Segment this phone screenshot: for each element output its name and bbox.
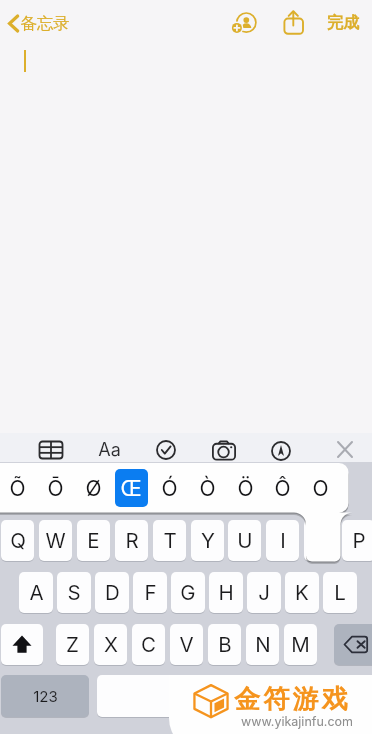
button[interactable]: Y	[191, 520, 224, 561]
staticText: J	[258, 580, 270, 605]
button[interactable]: D	[95, 572, 129, 613]
button[interactable]: Add people	[230, 9, 258, 35]
staticText: Aa	[98, 439, 121, 461]
button[interactable]: M	[284, 624, 317, 665]
staticText: A	[29, 580, 44, 605]
button[interactable]: I	[266, 520, 299, 561]
staticText: B	[218, 632, 232, 657]
staticText: W	[45, 528, 66, 553]
staticText: I	[280, 528, 286, 553]
staticText: P	[352, 528, 366, 553]
staticText: Ø	[85, 476, 102, 501]
staticText: H	[218, 580, 234, 605]
staticText: O	[312, 476, 329, 501]
staticText: N	[255, 632, 271, 657]
button[interactable]: O	[304, 520, 337, 561]
button[interactable]: F	[133, 572, 167, 613]
button[interactable]: J	[247, 572, 281, 613]
button[interactable]: X	[94, 624, 127, 665]
staticText: S	[67, 580, 81, 605]
button[interactable]: Ö	[226, 469, 264, 507]
button[interactable]: G	[171, 572, 205, 613]
staticText: Ö	[237, 476, 254, 501]
button[interactable]: Hide keyboard	[337, 441, 353, 458]
button[interactable]: Ō	[36, 469, 74, 507]
button[interactable]: 完成	[321, 10, 365, 36]
staticText: M	[291, 632, 310, 657]
button[interactable]: Markup	[271, 440, 291, 462]
button[interactable]: Shift	[1, 624, 43, 665]
staticText: G	[180, 580, 196, 605]
button[interactable]: Ò	[188, 469, 226, 507]
staticText: C	[141, 632, 156, 657]
button[interactable]: B	[208, 624, 241, 665]
button[interactable]: A	[19, 572, 53, 613]
button[interactable]: Share	[282, 9, 305, 35]
staticText: Õ	[9, 476, 26, 501]
button[interactable]: U	[228, 520, 261, 561]
staticText: T	[163, 528, 177, 553]
staticText: Ó	[161, 476, 178, 501]
button[interactable]: Space	[97, 675, 257, 717]
staticText: U	[237, 528, 253, 553]
button[interactable]: H	[209, 572, 243, 613]
button[interactable]: Ó	[150, 469, 188, 507]
button[interactable]: T	[153, 520, 186, 561]
staticText: 备忘录	[20, 13, 70, 34]
button[interactable]: Checklist	[156, 440, 176, 460]
staticText: www.yikajinfu.com	[241, 714, 353, 729]
staticText: E	[87, 528, 100, 553]
button[interactable]: Table	[39, 441, 63, 459]
staticText: Ò	[199, 476, 216, 501]
button[interactable]: Œ	[112, 469, 150, 507]
button[interactable]: C	[132, 624, 165, 665]
staticText: Y	[201, 528, 215, 553]
staticText: Z	[66, 632, 79, 657]
button[interactable]: W	[39, 520, 72, 561]
staticText: X	[104, 632, 118, 657]
staticText: 金符游戏	[234, 683, 351, 716]
button[interactable]: Q	[1, 520, 34, 561]
staticText: K	[295, 580, 309, 605]
staticText: Q	[10, 528, 26, 553]
button[interactable]: Text format	[94, 439, 124, 461]
button[interactable]: P	[342, 520, 372, 561]
button[interactable]: 123	[1, 675, 89, 717]
button[interactable]: Õ	[0, 469, 36, 507]
staticText: D	[105, 580, 120, 605]
staticText: F	[144, 580, 157, 605]
staticText: 123	[33, 687, 58, 705]
button[interactable]: S	[57, 572, 91, 613]
button[interactable]: 备忘录	[4, 11, 74, 36]
button[interactable]: V	[170, 624, 203, 665]
button[interactable]: L	[323, 572, 357, 613]
button[interactable]: R	[115, 520, 148, 561]
staticText: Ō	[47, 476, 64, 501]
button[interactable]: Ø	[74, 469, 112, 507]
staticText: L	[334, 580, 346, 605]
button[interactable]: Ô	[263, 469, 301, 507]
button[interactable]: K	[285, 572, 319, 613]
staticText: 完成	[327, 13, 359, 33]
staticText: Ô	[274, 476, 291, 501]
staticText: Œ	[120, 476, 142, 501]
staticText: R	[125, 528, 139, 553]
button[interactable]: O	[301, 469, 339, 507]
button[interactable]: E	[77, 520, 110, 561]
staticText: V	[179, 632, 194, 657]
button[interactable]: Z	[56, 624, 89, 665]
button[interactable]: N	[246, 624, 279, 665]
button[interactable]: Backspace	[334, 624, 372, 665]
button[interactable]: Camera	[212, 441, 236, 460]
